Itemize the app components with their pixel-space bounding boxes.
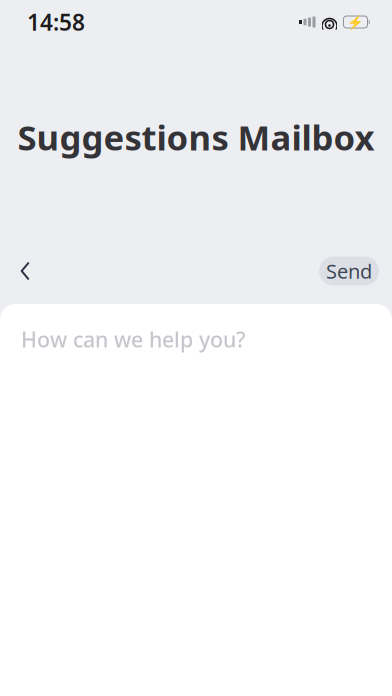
staticText: How can we help you? [21,325,246,353]
staticText: Suggestions Mailbox [17,114,374,160]
button[interactable]: Send [319,256,379,285]
button[interactable]: Back [3,251,47,291]
staticText: 14:58 [27,7,85,37]
staticText: ⚡ [347,14,364,30]
staticText: Send [326,258,372,284]
